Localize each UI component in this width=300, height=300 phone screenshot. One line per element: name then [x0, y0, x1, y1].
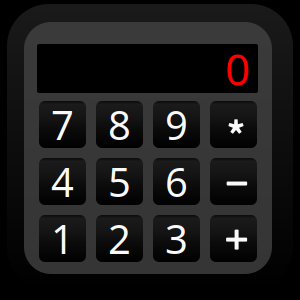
staticText: 1: [51, 212, 74, 265]
button[interactable]: Add: [210, 215, 257, 262]
staticText: 7: [51, 98, 74, 151]
staticText: 2: [108, 212, 131, 265]
staticText: 0: [225, 39, 250, 98]
button[interactable]: 8: [96, 101, 143, 148]
button[interactable]: 4: [39, 158, 86, 205]
button[interactable]: 7: [39, 101, 86, 148]
button[interactable]: 2: [96, 215, 143, 262]
staticText: 5: [108, 155, 131, 208]
staticText: 6: [165, 155, 188, 208]
button[interactable]: 9: [153, 101, 200, 148]
button[interactable]: 1: [39, 215, 86, 262]
button[interactable]: 6: [153, 158, 200, 205]
staticText: 3: [165, 212, 188, 265]
button[interactable]: 5: [96, 158, 143, 205]
staticText: 4: [51, 155, 74, 208]
button[interactable]: Multiply: [210, 101, 257, 148]
button[interactable]: 3: [153, 215, 200, 262]
staticText: 8: [108, 98, 131, 151]
staticText: 9: [165, 98, 188, 151]
button[interactable]: Subtract: [210, 158, 257, 205]
